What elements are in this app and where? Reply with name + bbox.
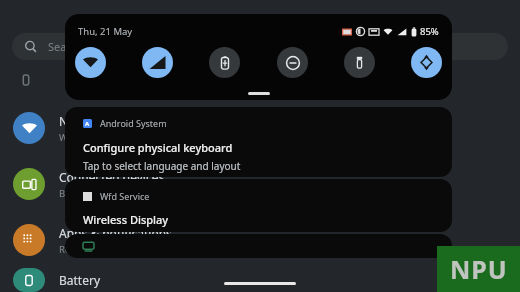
staticText: Wfd Service (100, 190, 150, 202)
staticText: Tap to select language and layout (83, 159, 241, 173)
button[interactable]: A (65, 107, 452, 177)
staticText: Network & internet (59, 113, 168, 129)
button[interactable] (0, 60, 520, 100)
staticText: NPU (450, 252, 508, 286)
staticText: 85% (420, 25, 439, 38)
staticText: Wi-Fi, mobile, data usage (59, 131, 171, 144)
staticText: Bluetooth, NFC (59, 187, 127, 200)
button[interactable]: Battery saver (209, 47, 240, 78)
button[interactable]: Wi-Fi (75, 47, 106, 78)
button[interactable]: Wfd Service (65, 179, 452, 232)
button[interactable]: Search settings (12, 33, 508, 60)
button[interactable]: Connected devices (0, 156, 520, 212)
staticText: Recent apps, default apps (59, 243, 175, 256)
button[interactable]: Apps & notifications (0, 212, 520, 268)
staticText: Configure physical keyboard (83, 140, 233, 155)
staticText: Wireless Display (83, 212, 169, 227)
staticText: Battery (59, 272, 101, 288)
staticText: Search settings (48, 39, 127, 54)
button[interactable]: Flashlight (344, 47, 375, 78)
button[interactable]: Battery (0, 268, 520, 292)
button[interactable] (65, 234, 452, 258)
staticText: Android System (100, 117, 167, 129)
button[interactable]: Network & internet (0, 100, 520, 156)
button[interactable]: Mobile data (142, 47, 173, 78)
button[interactable]: Do not disturb (277, 47, 308, 78)
staticText: Apps & notifications (59, 225, 172, 241)
button[interactable]: Auto rotate (411, 47, 442, 78)
staticText: Thu, 21 May (78, 25, 133, 38)
staticText: A (85, 120, 90, 128)
staticText: Connected devices (59, 169, 165, 185)
